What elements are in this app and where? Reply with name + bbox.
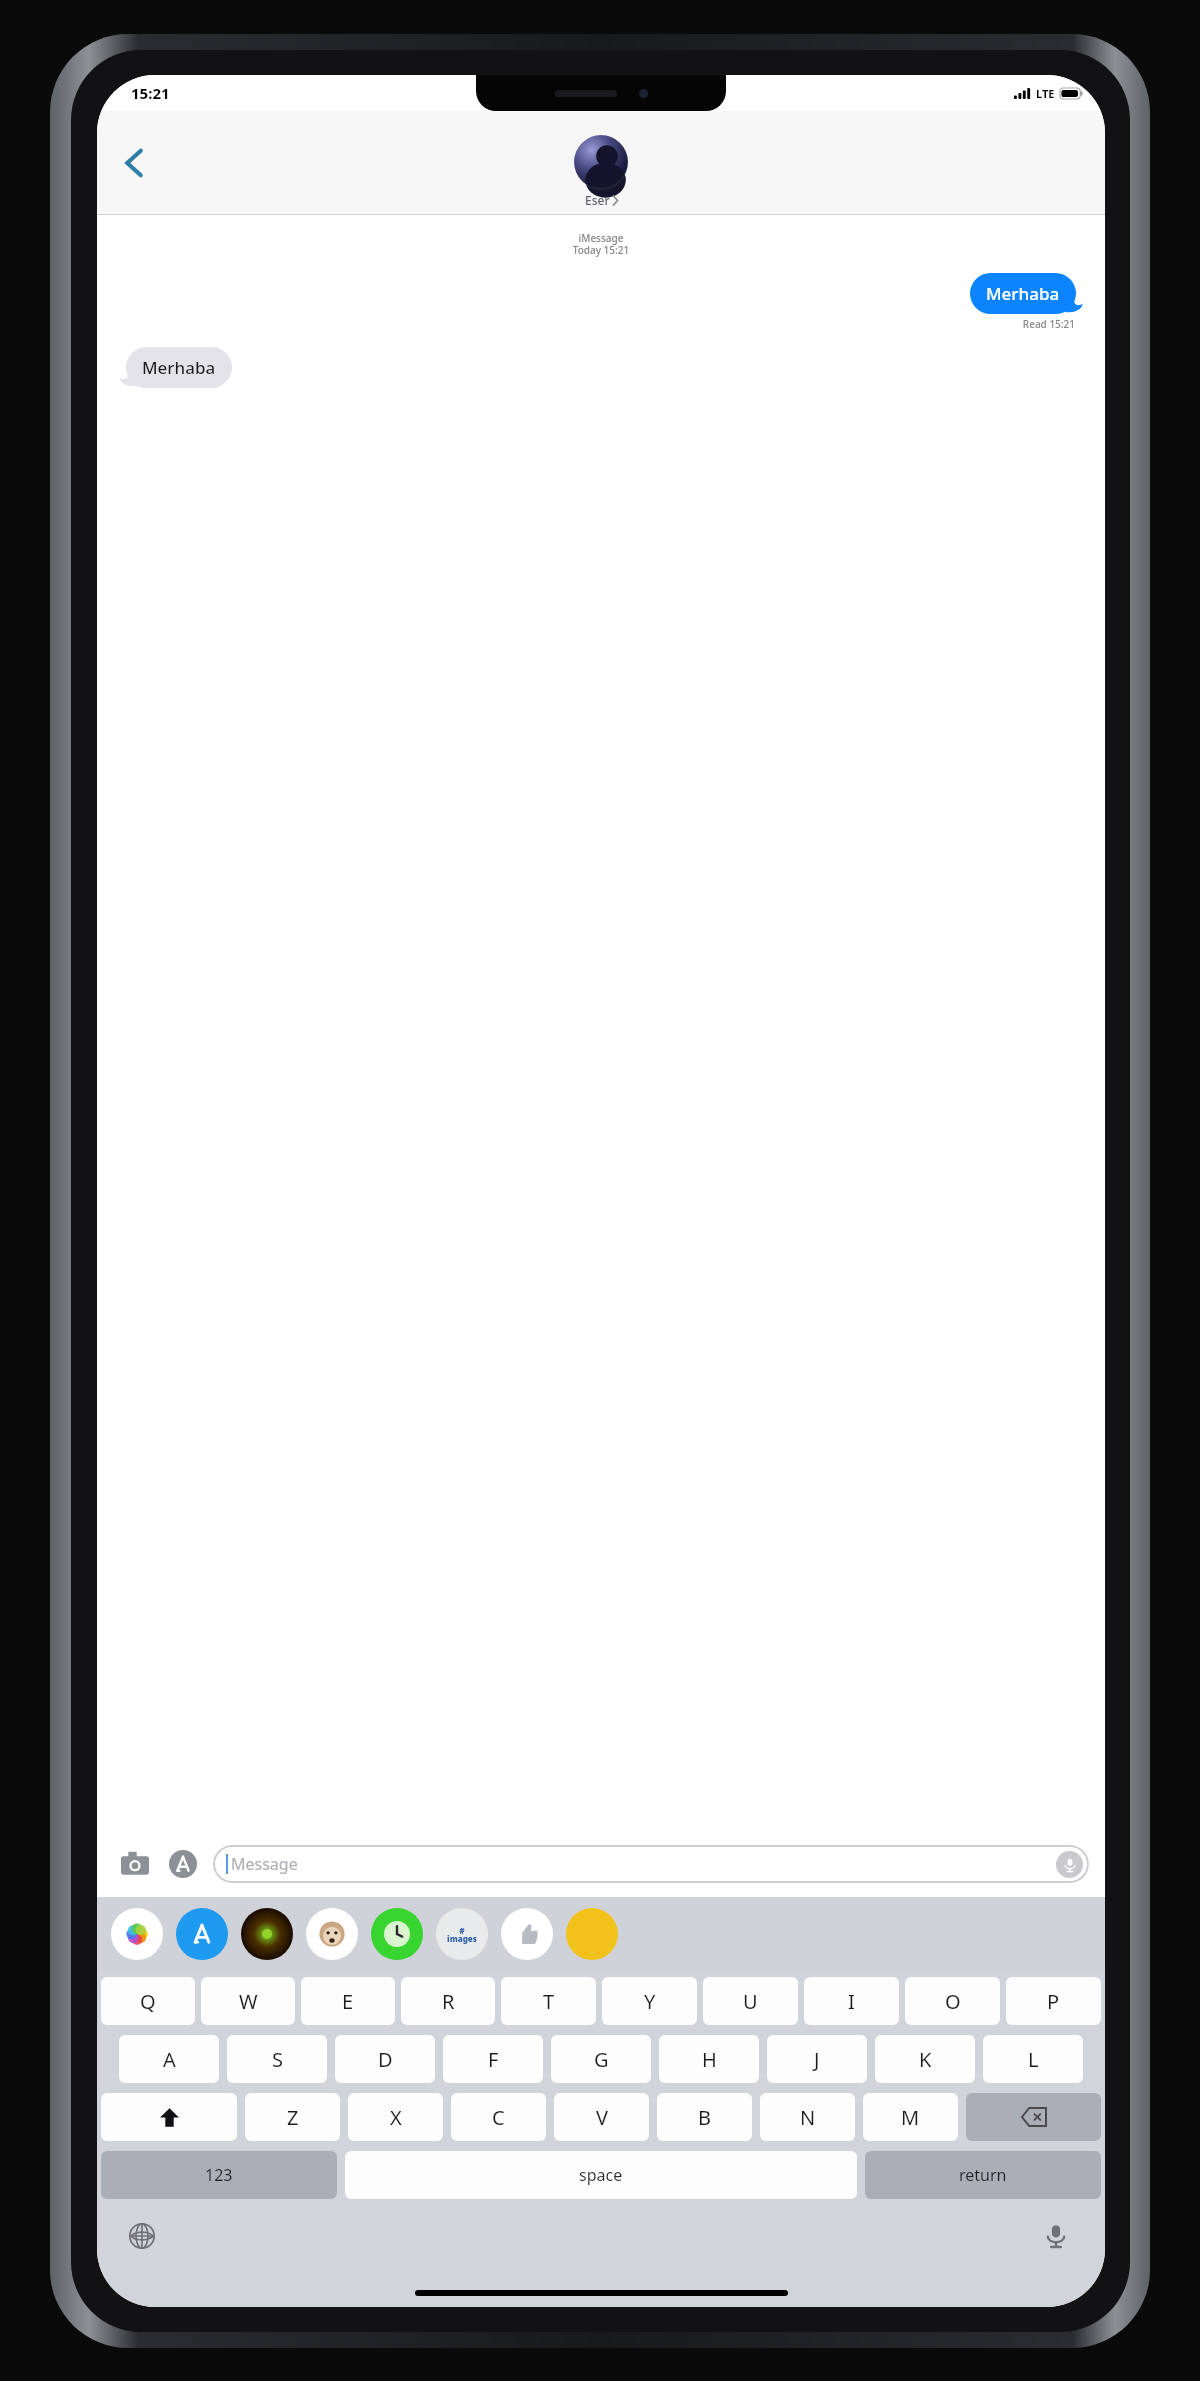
button[interactable]: Merhaba — [119, 347, 232, 388]
button[interactable]: App — [566, 1908, 618, 1960]
staticText: Z — [287, 2104, 299, 2131]
button[interactable]: App — [436, 1908, 488, 1960]
staticText: Eser — [585, 192, 610, 208]
staticText: J — [814, 2046, 820, 2073]
button[interactable]: N — [760, 2093, 855, 2141]
staticText: T — [543, 1988, 555, 2015]
button[interactable]: X — [348, 2093, 443, 2141]
button[interactable]: Back — [111, 140, 157, 186]
staticText: N — [800, 2104, 816, 2131]
button[interactable]: Camera — [113, 1842, 157, 1886]
staticText: LTE — [1036, 86, 1055, 101]
button[interactable]: T — [501, 1977, 596, 2025]
button[interactable]: App — [371, 1908, 423, 1960]
button[interactable]: Message — [213, 1845, 1089, 1883]
button[interactable]: App Store — [161, 1842, 205, 1886]
staticText: O — [945, 1988, 961, 2015]
staticText: 123 — [205, 2164, 233, 2186]
staticText: Message — [231, 1853, 298, 1875]
button[interactable]: Shift — [101, 2093, 237, 2141]
staticText: L — [1028, 2046, 1039, 2073]
staticText: M — [901, 2104, 920, 2131]
staticText: space — [579, 2164, 623, 2186]
button[interactable]: F — [443, 2035, 543, 2083]
button[interactable]: D — [335, 2035, 435, 2083]
button[interactable]: Y — [602, 1977, 697, 2025]
staticText: W — [239, 1988, 258, 2015]
staticText: Y — [644, 1988, 656, 2015]
button[interactable]: Q — [101, 1977, 195, 2025]
button[interactable]: App — [241, 1908, 293, 1960]
staticText: Merhaba — [986, 282, 1060, 305]
staticText: P — [1047, 1988, 1060, 2015]
button[interactable]: 123 — [101, 2151, 337, 2199]
button[interactable]: Z — [245, 2093, 340, 2141]
staticText: V — [596, 2104, 608, 2131]
button[interactable]: B — [657, 2093, 752, 2141]
button[interactable]: C — [451, 2093, 546, 2141]
staticText: U — [743, 1988, 758, 2015]
button[interactable]: App — [111, 1908, 163, 1960]
staticText: Q — [140, 1988, 156, 2015]
button[interactable]: I — [804, 1977, 899, 2025]
staticText: R — [442, 1988, 455, 2015]
button[interactable]: App — [501, 1908, 553, 1960]
button[interactable]: P — [1006, 1977, 1101, 2025]
staticText: X — [390, 2104, 402, 2131]
button[interactable]: space — [345, 2151, 857, 2199]
staticText: Merhaba — [142, 356, 216, 379]
button[interactable]: E — [301, 1977, 395, 2025]
staticText: G — [594, 2046, 609, 2073]
staticText: F — [488, 2046, 499, 2073]
staticText: 15:21 — [131, 83, 170, 103]
button[interactable]: Merhaba — [970, 273, 1083, 314]
button[interactable]: J — [767, 2035, 867, 2083]
button[interactable]: K — [875, 2035, 975, 2083]
staticText: B — [698, 2104, 711, 2131]
button[interactable]: Dictate — [1055, 1850, 1084, 1879]
staticText: iMessage Today 15:21 — [97, 231, 1105, 257]
button[interactable]: L — [983, 2035, 1083, 2083]
staticText: K — [919, 2046, 932, 2073]
staticText: D — [378, 2046, 393, 2073]
button[interactable]: R — [401, 1977, 495, 2025]
button[interactable]: Backspace — [966, 2093, 1101, 2141]
button[interactable]: V — [554, 2093, 649, 2141]
staticText: # images — [447, 1925, 477, 1944]
staticText: Read 15:21 — [97, 317, 1075, 331]
staticText: E — [342, 1988, 354, 2015]
button[interactable]: M — [863, 2093, 958, 2141]
staticText: C — [492, 2104, 505, 2131]
button[interactable]: H — [659, 2035, 759, 2083]
staticText: A — [163, 2046, 176, 2073]
button[interactable]: App — [306, 1908, 358, 1960]
button[interactable]: Change keyboard — [119, 2213, 165, 2259]
button[interactable]: Dictation — [1033, 2213, 1079, 2259]
button[interactable]: U — [703, 1977, 798, 2025]
button[interactable]: S — [227, 2035, 327, 2083]
staticText: return — [959, 2164, 1007, 2186]
staticText: H — [702, 2046, 717, 2073]
button[interactable]: G — [551, 2035, 651, 2083]
button[interactable]: A — [119, 2035, 219, 2083]
button[interactable]: W — [201, 1977, 295, 2025]
button[interactable]: Eser — [574, 135, 628, 208]
button[interactable]: return — [865, 2151, 1101, 2199]
staticText: I — [848, 1988, 855, 2015]
staticText: S — [272, 2046, 283, 2073]
button[interactable]: App — [176, 1908, 228, 1960]
button[interactable]: O — [905, 1977, 1000, 2025]
